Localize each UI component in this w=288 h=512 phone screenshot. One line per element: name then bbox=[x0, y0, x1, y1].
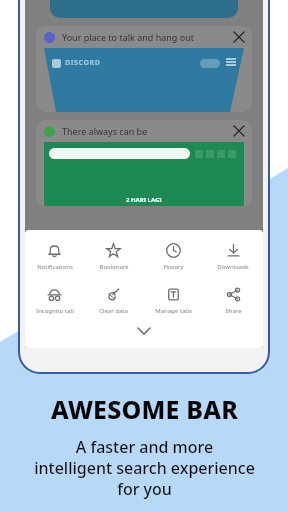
staticText: DISCORD bbox=[65, 58, 101, 68]
button[interactable]: Manage tabs bbox=[143, 284, 203, 317]
button[interactable]: Notifications bbox=[25, 240, 84, 273]
staticText: There always can be bbox=[62, 125, 148, 137]
button[interactable]: Downloads bbox=[203, 240, 263, 273]
staticText: Notifications bbox=[37, 263, 73, 271]
staticText: Your place to talk and hang out bbox=[62, 31, 194, 43]
button[interactable]: Share bbox=[203, 284, 263, 317]
staticText: History bbox=[163, 263, 184, 271]
staticText: Bookmark bbox=[99, 263, 129, 271]
button[interactable]: There always can be bbox=[36, 120, 252, 206]
staticText: Incognito tab bbox=[36, 307, 74, 315]
staticText: Manage tabs bbox=[155, 307, 192, 315]
staticText: 2 HARI LAGI bbox=[126, 196, 162, 204]
button[interactable]: Incognito tab bbox=[25, 284, 84, 317]
button[interactable]: Collapse bbox=[25, 323, 263, 339]
button[interactable]: Bookmark bbox=[84, 240, 143, 273]
staticText: Share bbox=[225, 307, 242, 315]
staticText: A faster and more intelligent search exp… bbox=[34, 436, 255, 500]
staticText: AWESOME BAR bbox=[51, 392, 238, 426]
button[interactable]: Your place to talk and hang out bbox=[36, 26, 252, 112]
button[interactable]: History bbox=[143, 240, 203, 273]
staticText: Downloads bbox=[217, 263, 249, 271]
staticText: Clear data bbox=[99, 307, 128, 315]
button[interactable]: Clear data bbox=[84, 284, 143, 317]
